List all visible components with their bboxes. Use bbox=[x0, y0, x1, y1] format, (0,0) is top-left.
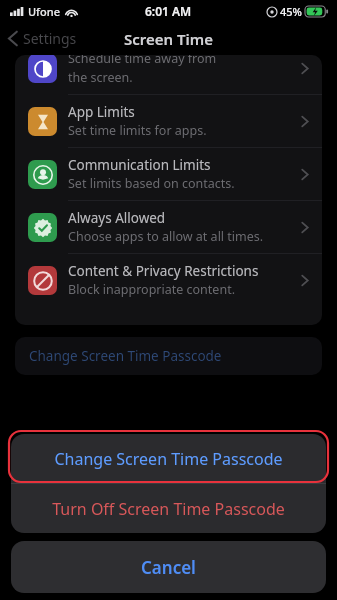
button[interactable]: Communication Limits bbox=[15, 148, 322, 200]
button[interactable]: Cancel bbox=[11, 541, 326, 593]
staticText: Change Screen Time Passcode bbox=[29, 347, 222, 365]
staticText: Communication Limits bbox=[68, 156, 211, 174]
staticText: Choose apps to allow at all times. bbox=[68, 228, 264, 245]
button[interactable]: Change Screen Time Passcode bbox=[11, 434, 326, 483]
staticText: Screen Time bbox=[124, 29, 213, 49]
button[interactable]: Content & Privacy Restrictions bbox=[15, 254, 322, 306]
staticText: Settings bbox=[23, 29, 77, 48]
button[interactable]: Always Allowed bbox=[15, 201, 322, 253]
staticText: Turn Off Screen Time Passcode bbox=[52, 498, 285, 520]
button[interactable]: App Limits bbox=[15, 95, 322, 147]
staticText: Ufone bbox=[28, 4, 60, 19]
staticText: the screen. bbox=[68, 69, 133, 86]
staticText: App Limits bbox=[68, 103, 135, 121]
button[interactable]: Change Screen Time Passcode bbox=[15, 337, 322, 375]
button[interactable]: Turn Off Screen Time Passcode bbox=[11, 484, 326, 533]
staticText: Set limits based on contacts. bbox=[68, 175, 235, 192]
button[interactable]: Schedule time away from bbox=[15, 55, 322, 94]
staticText: 45% bbox=[280, 4, 302, 19]
staticText: Change Screen Time Passcode bbox=[54, 448, 283, 470]
staticText: Content & Privacy Restrictions bbox=[68, 262, 259, 280]
staticText: 6:01 AM bbox=[145, 3, 192, 19]
other: Highlighted option bbox=[9, 431, 328, 482]
button[interactable]: Settings bbox=[0, 25, 85, 52]
staticText: Schedule time away from bbox=[68, 55, 217, 67]
staticText: Cancel bbox=[141, 556, 196, 579]
staticText: Set time limits for apps. bbox=[68, 122, 207, 139]
staticText: Block inappropriate content. bbox=[68, 281, 235, 298]
staticText: Always Allowed bbox=[68, 209, 166, 227]
